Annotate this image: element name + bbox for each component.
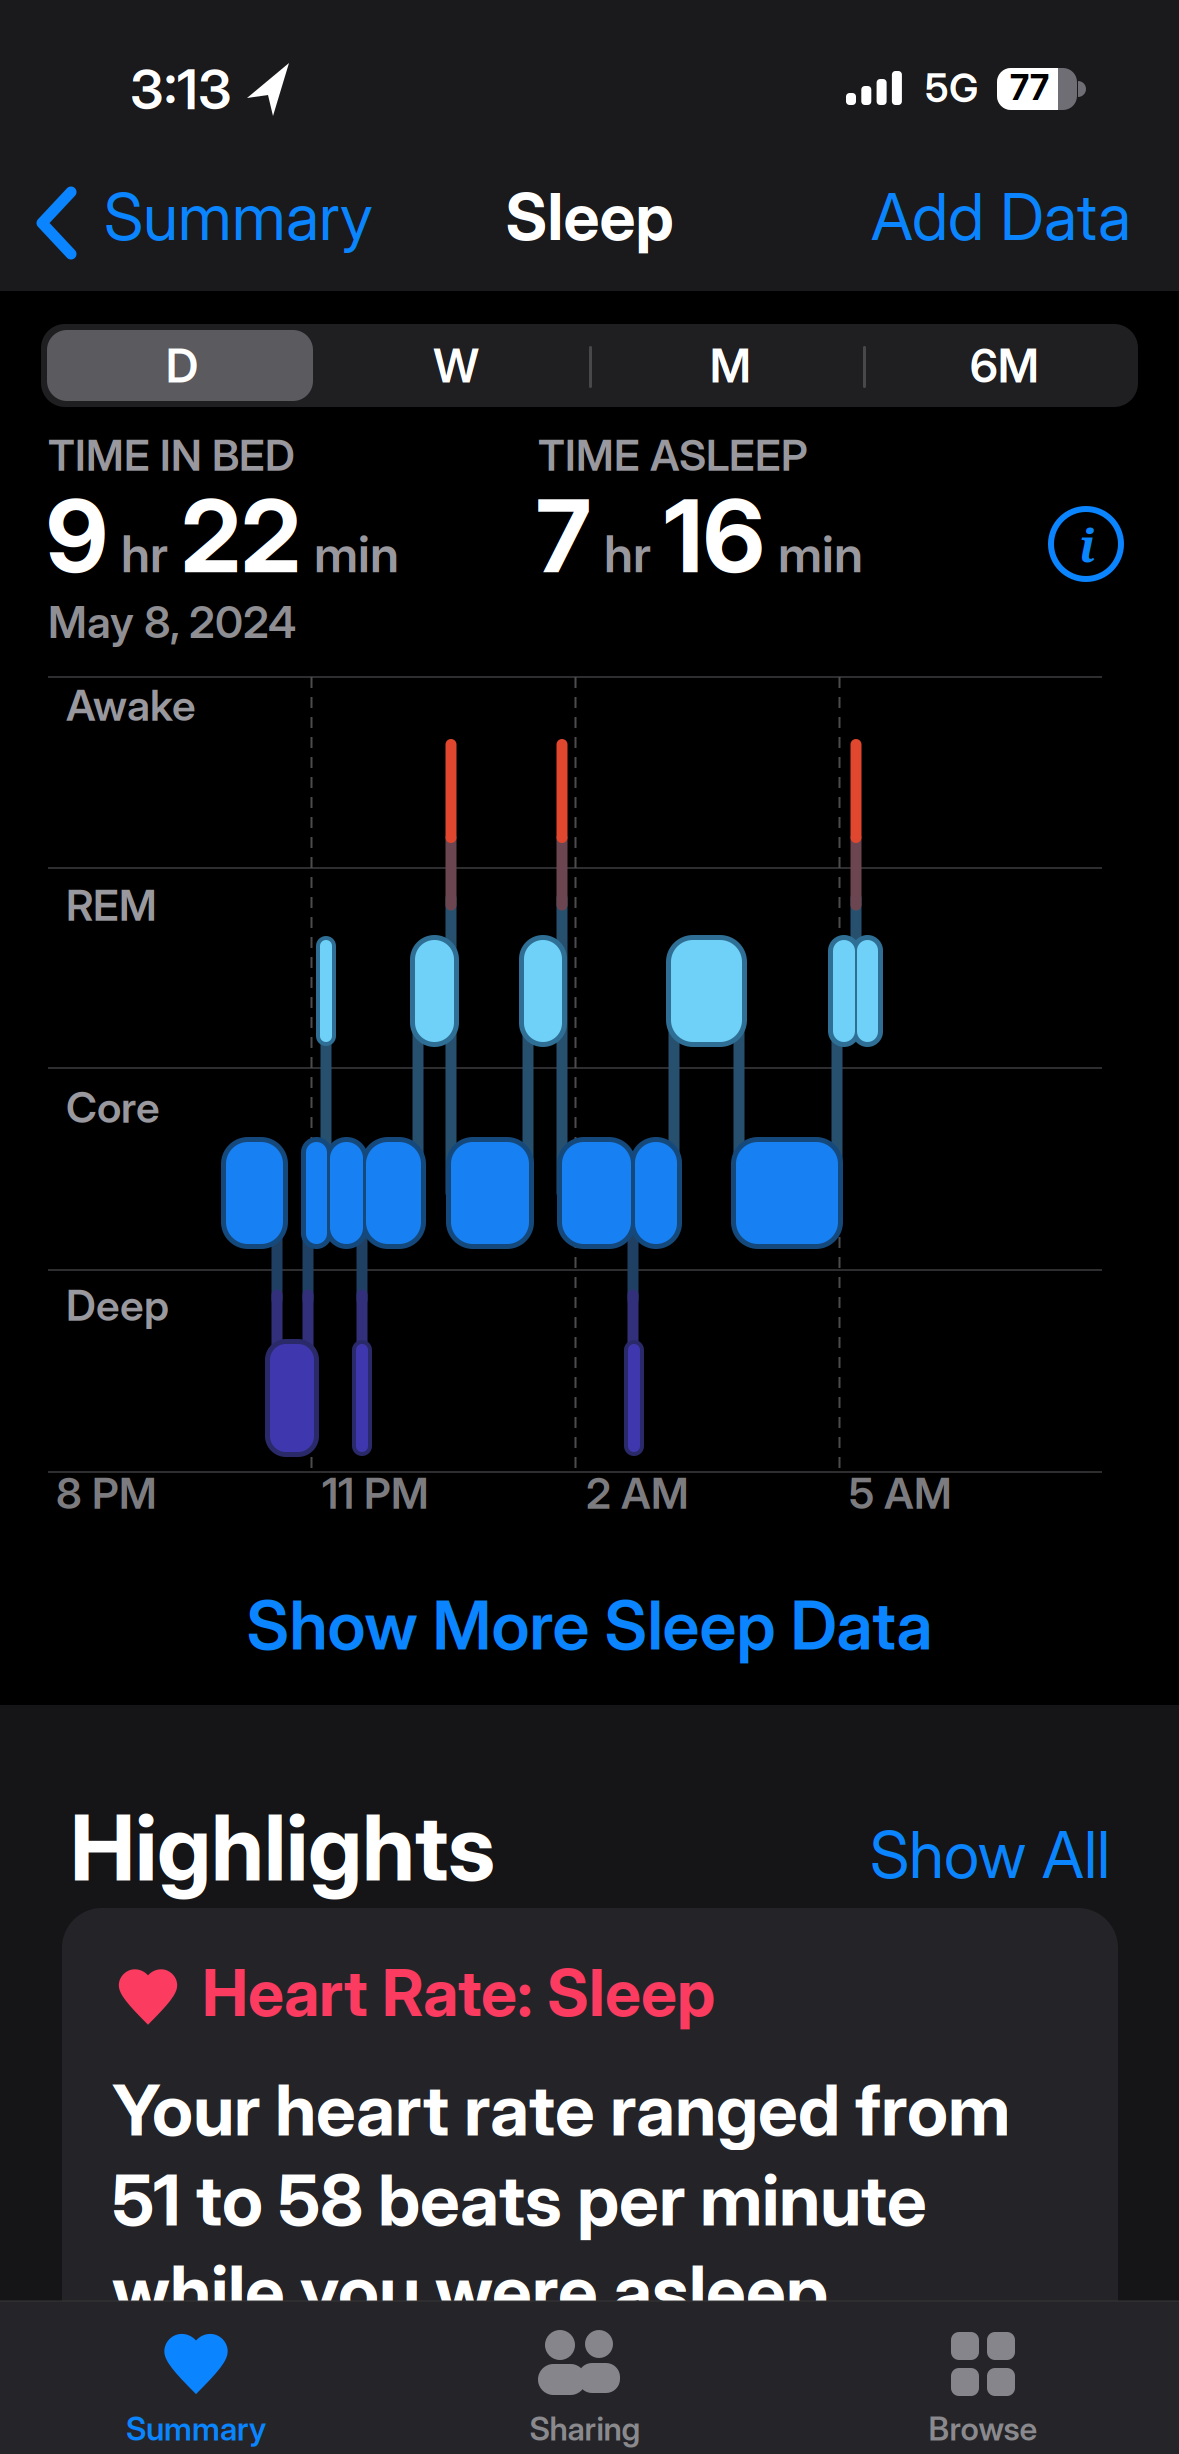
staticText: Deep: [66, 1280, 169, 1330]
button[interactable]: 6M: [867, 338, 1141, 393]
staticText: hr: [121, 524, 168, 584]
staticText: W: [433, 338, 479, 393]
staticText: M: [710, 338, 751, 393]
staticText: i: [1079, 514, 1095, 576]
staticText: hr: [604, 524, 651, 584]
button[interactable]: Sharing: [0, 0, 1179, 2454]
staticText: 7: [536, 477, 591, 595]
staticText: Summary: [104, 179, 373, 254]
staticText: 77: [1010, 67, 1049, 108]
staticText: Core: [66, 1082, 160, 1132]
staticText: 11 PM: [322, 1468, 429, 1518]
button[interactable]: Show More Sleep Data: [0, 1586, 1179, 1665]
staticText: Summary: [126, 2410, 266, 2448]
button[interactable]: Show All: [0, 1817, 1110, 1892]
button[interactable]: Heart Rate: Sleep: [0, 0, 1179, 2454]
button[interactable]: Add Data: [0, 179, 1131, 254]
button[interactable]: W: [319, 338, 593, 393]
staticText: 22: [181, 477, 301, 595]
button[interactable]: Summary: [0, 0, 1179, 2454]
staticText: TIME ASLEEP: [538, 430, 808, 480]
staticText: Add Data: [871, 179, 1131, 254]
staticText: Show All: [870, 1817, 1110, 1892]
staticText: Your heart rate ranged from: [112, 2068, 1010, 2151]
staticText: while you were asleep.: [112, 2249, 845, 2332]
button[interactable]: Back to Summary: [0, 0, 1179, 2454]
staticText: 6M: [970, 338, 1039, 393]
staticText: Sleep: [505, 179, 673, 254]
staticText: 5G: [925, 64, 978, 111]
staticText: 8 PM: [56, 1468, 157, 1518]
staticText: Browse: [928, 2410, 1037, 2448]
staticText: Heart Rate: Sleep: [202, 1955, 715, 2030]
staticText: min: [314, 524, 399, 584]
staticText: 3:13: [130, 57, 232, 121]
button[interactable]: Browse: [0, 0, 1179, 2454]
staticText: 16: [664, 477, 765, 595]
staticText: Show More Sleep Data: [246, 1586, 932, 1665]
staticText: 51 to 58 beats per minute: [112, 2158, 927, 2241]
staticText: Sharing: [529, 2410, 640, 2448]
staticText: 5 AM: [849, 1468, 952, 1518]
staticText: min: [778, 524, 863, 584]
staticText: Highlights: [70, 1794, 495, 1901]
staticText: 2 AM: [586, 1468, 689, 1518]
staticText: 9: [46, 477, 108, 595]
staticText: D: [166, 338, 199, 393]
staticText: TIME IN BED: [48, 430, 295, 480]
button[interactable]: About Sleep: [0, 0, 1179, 2454]
button[interactable]: M: [593, 338, 867, 393]
staticText: REM: [66, 880, 157, 930]
button[interactable]: D: [45, 338, 319, 393]
staticText: May 8, 2024: [48, 596, 296, 648]
staticText: Awake: [66, 680, 196, 730]
